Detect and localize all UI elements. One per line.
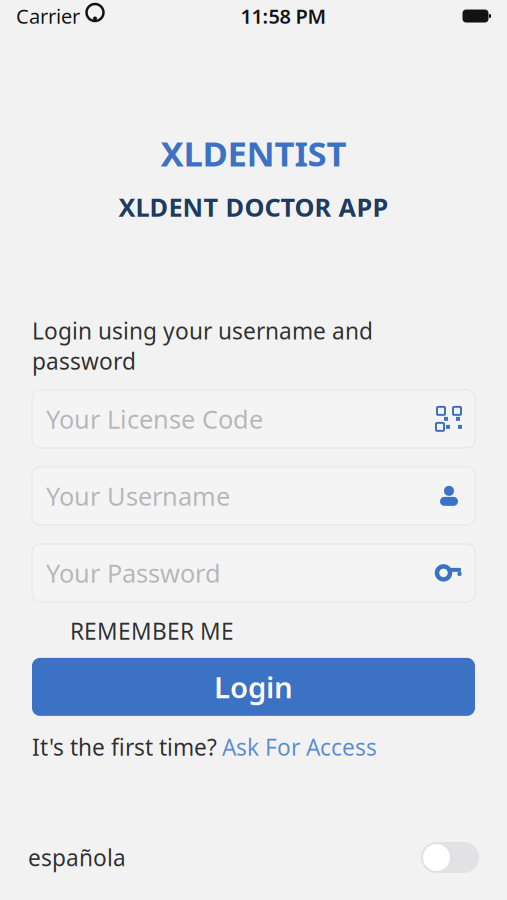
button[interactable]: Your License Code xyxy=(32,390,475,448)
staticText: REMEMBER ME xyxy=(70,616,234,646)
staticText: española xyxy=(28,842,126,872)
staticText: Login using your username and password xyxy=(32,316,373,376)
staticText: Your Username xyxy=(46,479,230,513)
button[interactable]: Ask For Access xyxy=(222,732,377,762)
button[interactable]: Login xyxy=(32,658,475,716)
staticText: Login xyxy=(214,667,293,706)
button[interactable]: Your Username xyxy=(32,467,475,525)
staticText: 11:58 PM xyxy=(240,3,326,29)
button[interactable]: Your Password xyxy=(32,544,475,602)
button[interactable]: Spanish language xyxy=(421,842,479,873)
staticText: It's the first time? xyxy=(32,732,217,762)
staticText: XLDENTIST xyxy=(160,130,346,176)
button[interactable]: REMEMBER ME xyxy=(32,616,475,646)
staticText: Your Password xyxy=(46,556,221,590)
staticText: XLDENT DOCTOR APP xyxy=(118,190,388,224)
staticText: Ask For Access xyxy=(222,732,377,762)
staticText: Carrier xyxy=(16,3,80,29)
staticText: Your License Code xyxy=(46,402,263,436)
